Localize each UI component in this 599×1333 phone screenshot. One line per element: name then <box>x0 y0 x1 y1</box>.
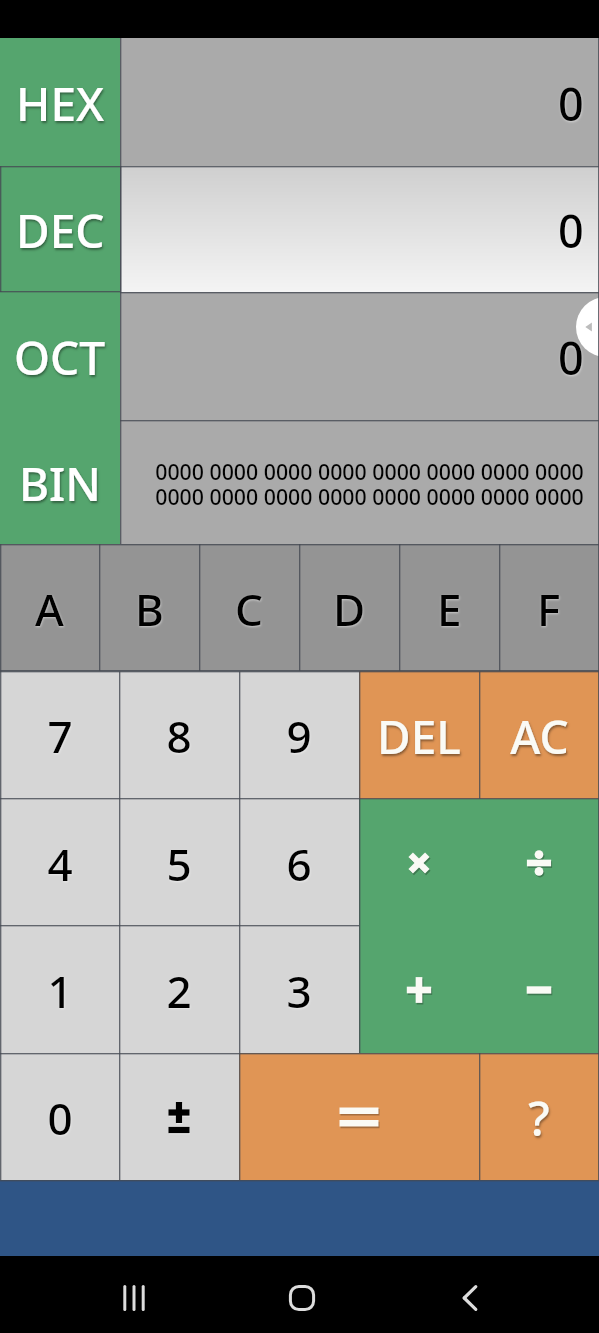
staticText: 0 <box>47 1088 73 1148</box>
button[interactable]: 0000 0000 0000 0000 0000 0000 0000 0000 … <box>120 420 599 544</box>
staticText: 0 <box>558 73 584 134</box>
button[interactable]: HEX <box>0 38 120 166</box>
button[interactable]: Edge panel handle <box>576 297 599 357</box>
button[interactable]: 9 <box>239 671 359 799</box>
staticText: 0 <box>558 200 584 261</box>
button[interactable]: 1 <box>0 926 119 1053</box>
staticText: B <box>135 579 164 639</box>
staticText: HEX <box>16 72 105 135</box>
button[interactable]: 4 <box>0 799 119 926</box>
staticText: 4 <box>47 834 73 894</box>
button[interactable]: Plus minus <box>119 1053 239 1180</box>
button[interactable]: Back <box>435 1263 505 1333</box>
button[interactable]: 3 <box>239 926 359 1053</box>
staticText: 7 <box>47 706 73 766</box>
staticText: 1 <box>47 961 73 1021</box>
button[interactable]: C <box>199 544 299 671</box>
button[interactable]: 7 <box>0 671 119 799</box>
button[interactable]: BIN <box>0 420 120 544</box>
staticText: DEL <box>377 705 461 768</box>
staticText: OCT <box>14 326 106 389</box>
button[interactable]: 0 <box>120 38 599 166</box>
button[interactable]: 8 <box>119 671 239 799</box>
button[interactable]: 0 <box>0 1053 119 1180</box>
button[interactable]: Equals <box>239 1053 479 1180</box>
button[interactable]: D <box>299 544 399 671</box>
button[interactable]: B <box>99 544 199 671</box>
staticText: DEC <box>16 199 105 262</box>
button[interactable]: Home <box>267 1263 337 1333</box>
button[interactable]: 2 <box>119 926 239 1053</box>
button[interactable]: DEL <box>359 671 479 799</box>
button[interactable]: Recent apps <box>99 1263 169 1333</box>
staticText: 2 <box>166 961 192 1021</box>
button[interactable]: 5 <box>119 799 239 926</box>
staticText: 6 <box>286 834 312 894</box>
button[interactable]: 0 <box>120 292 599 420</box>
button[interactable]: 6 <box>239 799 359 926</box>
button[interactable]: E <box>399 544 499 671</box>
staticText: E <box>437 579 462 639</box>
button[interactable]: AC <box>479 671 599 799</box>
staticText: D <box>333 579 366 639</box>
button[interactable]: Divide <box>479 799 599 926</box>
staticText: F <box>537 579 561 639</box>
staticText: BIN <box>19 452 102 515</box>
staticText: 0 <box>558 327 584 388</box>
staticText: 3 <box>286 961 312 1021</box>
button[interactable]: Multiply <box>359 799 479 926</box>
staticText: 0000 0000 0000 0000 0000 0000 0000 0000 … <box>155 457 584 511</box>
staticText: C <box>235 579 263 639</box>
staticText: 9 <box>286 706 312 766</box>
staticText: 5 <box>166 834 192 894</box>
staticText: 8 <box>166 706 192 766</box>
staticText: A <box>35 579 64 639</box>
button[interactable]: Plus <box>359 926 479 1053</box>
button[interactable]: DEC <box>0 166 120 292</box>
staticText: ? <box>528 1085 550 1150</box>
button[interactable]: Minus <box>479 926 599 1053</box>
staticText: AC <box>510 705 569 768</box>
button[interactable]: A <box>0 544 99 671</box>
button[interactable]: 0 <box>120 166 599 292</box>
button[interactable]: F <box>499 544 599 671</box>
button[interactable]: OCT <box>0 292 120 420</box>
button[interactable]: ? <box>479 1053 599 1180</box>
